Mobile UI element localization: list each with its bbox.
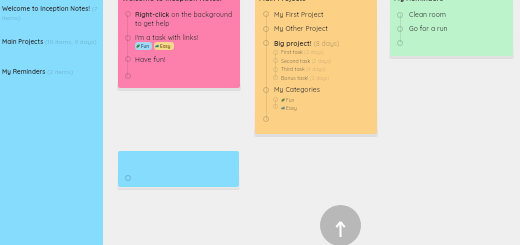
button[interactable]	[390, 0, 513, 56]
button[interactable]: First task (2 days)	[281, 49, 481, 55]
button[interactable]: Welcome to Inception Notes!	[122, 0, 222, 3]
button[interactable]	[124, 72, 132, 80]
button[interactable]: Fun	[281, 97, 295, 103]
staticText: Easy	[160, 43, 171, 49]
button[interactable]	[396, 11, 404, 19]
button[interactable]	[118, 0, 240, 88]
button[interactable]: My Other Project	[274, 24, 474, 33]
staticText: Welcome to Inception Notes! (7 items)	[2, 5, 98, 22]
button[interactable]	[255, 0, 377, 134]
button[interactable]	[272, 49, 279, 56]
button[interactable]	[124, 174, 132, 182]
button[interactable]	[396, 25, 404, 33]
button[interactable]: My First Project	[274, 10, 474, 19]
button[interactable]: Main Projects (10 items, 9 days)	[2, 38, 98, 46]
button[interactable]: Easy	[155, 43, 171, 49]
button[interactable]: I'm a task with links!	[135, 33, 335, 42]
button[interactable]: Clean room	[409, 10, 520, 19]
staticText: Right-click on the background to get hel…	[135, 10, 235, 28]
button[interactable]	[262, 86, 270, 94]
button[interactable]	[262, 39, 270, 47]
button[interactable]: Have fun!	[135, 55, 335, 64]
button[interactable]	[272, 74, 279, 81]
button[interactable]: My Reminders	[394, 0, 444, 3]
button[interactable]: My Reminders (2 items)	[2, 68, 98, 76]
button[interactable]: Easy	[281, 105, 297, 111]
button[interactable]	[124, 9, 232, 26]
button[interactable]: My Categories	[274, 85, 474, 94]
button[interactable]: Third task (4 days)	[281, 66, 481, 72]
button[interactable]: Big project! (8 days)	[274, 39, 474, 48]
button[interactable]: Welcome to Inception Notes! (7 items)	[2, 5, 98, 22]
staticText: My Reminders (2 items)	[2, 68, 74, 76]
button[interactable]: Bonus task! (2 days)	[281, 75, 481, 81]
button[interactable]: Second task (2 days)	[281, 58, 481, 64]
button[interactable]: Go for a run	[409, 24, 520, 33]
button[interactable]	[262, 115, 270, 123]
staticText: Fun	[141, 43, 149, 49]
button[interactable]	[262, 25, 270, 33]
staticText: Easy	[286, 105, 297, 111]
button[interactable]	[124, 55, 132, 63]
staticText: Fun	[286, 97, 295, 103]
staticText: Main Projects (10 items, 9 days)	[2, 38, 97, 46]
button[interactable]: Scroll to top	[320, 205, 361, 245]
button[interactable]: Main Projects	[259, 0, 306, 3]
button[interactable]: Fun	[136, 43, 149, 49]
button[interactable]	[124, 34, 132, 42]
button[interactable]	[272, 96, 279, 103]
button[interactable]	[272, 103, 279, 110]
button[interactable]	[396, 39, 404, 47]
button[interactable]	[272, 57, 279, 64]
button[interactable]	[262, 10, 270, 18]
button[interactable]	[272, 66, 279, 73]
